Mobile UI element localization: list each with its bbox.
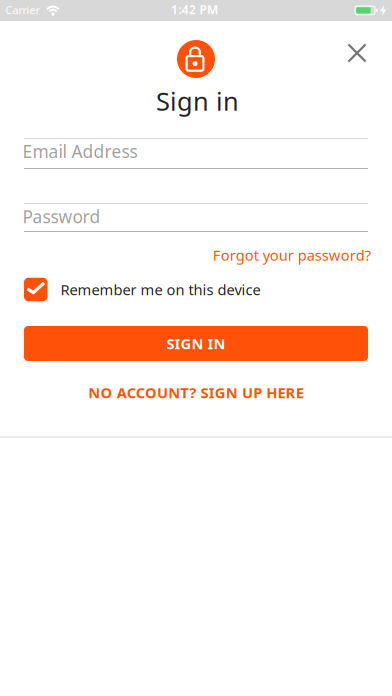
button[interactable]: Email Address [24, 138, 368, 169]
button[interactable]: Password [24, 203, 368, 232]
staticText: Remember me on this device [60, 280, 260, 299]
staticText: NO ACCOUNT? SIGN UP HERE [88, 383, 304, 402]
button[interactable]: Remember me on this device [24, 278, 260, 301]
staticText: Password [22, 205, 100, 228]
staticText: Email Address [22, 140, 137, 163]
staticText: Sign in [156, 84, 239, 118]
staticText: Carrier [5, 3, 39, 17]
staticText: SIGN IN [166, 334, 225, 353]
staticText: Forgot your password? [213, 245, 371, 265]
staticText: 1:42 PM [171, 1, 218, 17]
button[interactable]: SIGN IN [24, 326, 368, 361]
button[interactable]: NO ACCOUNT? SIGN UP HERE [88, 383, 304, 402]
button[interactable]: Forgot your password? [213, 245, 371, 265]
button[interactable]: Close [339, 35, 374, 70]
